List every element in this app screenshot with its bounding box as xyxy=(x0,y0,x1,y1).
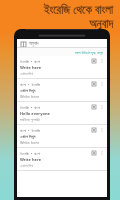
staticText: এখানে লিখ xyxy=(20,71,34,76)
button[interactable]: Bookmark xyxy=(91,81,97,87)
button[interactable]: More options xyxy=(99,150,105,156)
staticText: সকল ইতিহাস মুছে ফেলুন xyxy=(75,50,104,55)
staticText: Write here xyxy=(20,157,42,162)
button[interactable]: Bookmark xyxy=(91,58,97,64)
staticText: Write here xyxy=(20,140,40,145)
staticText: অনুবাদ xyxy=(89,19,113,30)
button[interactable]: Bookmark xyxy=(91,104,97,110)
staticText: ইংরেজি • বাংলা xyxy=(20,151,91,156)
button[interactable]: Bookmark xyxy=(91,127,97,133)
staticText: Write here xyxy=(20,94,40,99)
button[interactable]: ইংরেজি • বাংলা xyxy=(17,148,107,171)
staticText: বাংলা • ইংরেজি xyxy=(20,128,91,133)
button[interactable]: ইংরেজি • বাংলা xyxy=(17,102,107,125)
button[interactable]: Bookmark xyxy=(91,150,97,156)
staticText: এখানে লিখুন xyxy=(20,88,36,93)
staticText: বাংলা • ইংরেজি xyxy=(20,82,91,87)
staticText: সবাইকে শুভেচ্ছা xyxy=(20,117,40,122)
staticText: ইংরেজি • বাংলা xyxy=(20,59,91,64)
button[interactable]: ইংরেজি • বাংলা xyxy=(17,56,107,79)
button[interactable]: Menu xyxy=(20,41,26,47)
button[interactable]: বাংলা • ইংরেজি xyxy=(17,79,107,102)
staticText: Hello everyone xyxy=(20,111,50,116)
button[interactable]: More options xyxy=(99,127,105,133)
staticText: অনুবাদ xyxy=(29,41,39,46)
staticText: ইংরেজি • বাংলা xyxy=(20,105,91,110)
staticText: Write here xyxy=(20,65,42,70)
button[interactable]: More options xyxy=(99,58,105,64)
button[interactable]: More options xyxy=(99,81,105,87)
button[interactable]: More options xyxy=(99,104,105,110)
button[interactable]: বাংলা • ইংরেজি xyxy=(17,125,107,148)
staticText: ইংরেজি থেকে বাংলা xyxy=(43,2,113,18)
staticText: এখানে লিখ xyxy=(20,163,34,168)
staticText: এখানে লিখুন xyxy=(20,134,36,139)
